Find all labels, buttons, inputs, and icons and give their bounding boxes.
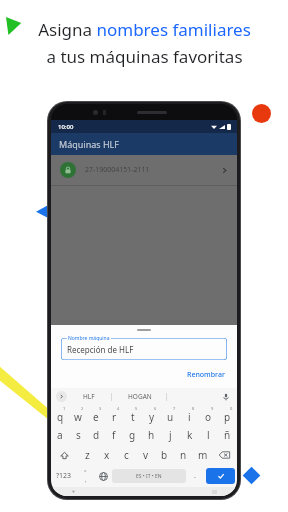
button[interactable]: n [174, 445, 193, 465]
staticText: g [129, 428, 136, 442]
button[interactable]: d [87, 425, 105, 445]
button[interactable]: 7 [161, 405, 180, 425]
staticText: s [76, 428, 81, 442]
staticText: 4 [117, 406, 120, 411]
staticText: v [143, 448, 149, 462]
staticText: w [74, 410, 82, 424]
staticText: HLF [83, 392, 95, 401]
button[interactable]: Voice input [220, 391, 232, 403]
staticText: e [93, 410, 99, 424]
button[interactable]: s [69, 425, 87, 445]
button[interactable]: 27-190004151-2111 [51, 155, 237, 185]
staticText: ES • IT • EN [136, 473, 162, 480]
staticText: 6 [154, 406, 157, 411]
staticText: 8 [192, 406, 195, 411]
button[interactable]: a [51, 425, 69, 445]
staticText: o [205, 410, 212, 424]
button[interactable]: ñ [218, 425, 237, 445]
button[interactable]: x [97, 445, 117, 465]
button[interactable]: ?123 [51, 465, 76, 487]
staticText: j [169, 428, 172, 442]
button[interactable]: Change language [94, 465, 112, 487]
staticText: ° [84, 468, 87, 476]
button[interactable]: ES • IT • EN [112, 469, 186, 483]
staticText: u [167, 410, 174, 424]
button[interactable]: Shift [51, 445, 77, 465]
button[interactable]: 6 [142, 405, 161, 425]
button[interactable]: 1 [51, 405, 69, 425]
staticText: , [85, 476, 87, 484]
button[interactable]: ° [76, 465, 94, 487]
button[interactable]: z [77, 445, 97, 465]
button[interactable]: . [186, 465, 204, 487]
staticText: c [124, 448, 129, 462]
button[interactable]: b [155, 445, 174, 465]
button[interactable]: 2 [69, 405, 87, 425]
staticText: 9 [211, 406, 214, 411]
button[interactable]: g [123, 425, 142, 445]
staticText: 2 [81, 406, 84, 411]
button[interactable]: Expand suggestions [56, 391, 67, 402]
staticText: ?123 [56, 471, 72, 481]
staticText: q [57, 410, 64, 424]
staticText: a [57, 428, 63, 442]
staticText: Recepción de HLF [67, 344, 134, 355]
staticText: 7 [173, 406, 176, 411]
staticText: m [198, 448, 208, 462]
staticText: . [194, 471, 196, 481]
staticText: t [131, 410, 135, 424]
staticText: f [112, 428, 116, 442]
button[interactable]: Backspace [212, 445, 237, 465]
button[interactable]: 5 [123, 405, 142, 425]
staticText: p [224, 410, 231, 424]
staticText: 0 [230, 406, 233, 411]
button[interactable]: c [117, 445, 136, 465]
staticText: Renombrar [187, 370, 225, 380]
button[interactable]: v [136, 445, 155, 465]
staticText: z [85, 448, 90, 462]
staticText: d [93, 428, 100, 442]
button[interactable]: HLF [77, 389, 101, 404]
staticText: 10:00 [58, 123, 74, 131]
staticText: h [148, 428, 155, 442]
button[interactable]: 4 [105, 405, 123, 425]
button[interactable]: f [105, 425, 123, 445]
staticText: k [187, 428, 193, 442]
staticText: b [161, 448, 168, 462]
staticText: 3 [99, 406, 102, 411]
staticText: 5 [135, 406, 138, 411]
staticText: 1 [63, 406, 66, 411]
staticText: r [112, 410, 117, 424]
button[interactable]: 8 [180, 405, 199, 425]
staticText: n [180, 448, 187, 462]
staticText: HOGAN [128, 392, 152, 401]
button[interactable]: h [142, 425, 161, 445]
button[interactable]: Renombrar [185, 368, 227, 382]
staticText: Nombre máquina [68, 335, 110, 342]
staticText: l [207, 428, 210, 442]
staticText: y [149, 410, 155, 424]
button[interactable]: 9 [199, 405, 218, 425]
staticText: 27-190004151-2111 [85, 165, 150, 175]
button[interactable]: l [199, 425, 218, 445]
button[interactable]: Enter [206, 468, 235, 484]
staticText: i [188, 410, 191, 424]
staticText: ñ [224, 428, 231, 442]
button[interactable]: j [161, 425, 180, 445]
staticText: a tus máquinas favoritas [46, 45, 243, 68]
staticText: Asigna nombres familiares [38, 18, 251, 41]
staticText: Máquinas HLF [59, 138, 119, 150]
button[interactable]: k [180, 425, 199, 445]
button[interactable]: HOGAN [122, 389, 158, 404]
staticText: x [104, 448, 110, 462]
button[interactable]: 3 [87, 405, 105, 425]
button[interactable]: m [193, 445, 212, 465]
button[interactable]: 0 [218, 405, 237, 425]
